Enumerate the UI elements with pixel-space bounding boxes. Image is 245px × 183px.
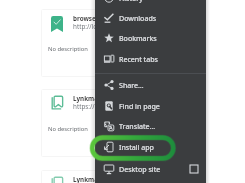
staticText: Recent tabs: [119, 54, 158, 64]
button[interactable]: Recent tabs: [95, 49, 206, 69]
button[interactable]: Bookmarks: [95, 28, 206, 48]
staticText: Share…: [119, 80, 144, 90]
staticText: Lynkmark bookmarks: [73, 94, 142, 103]
button[interactable]: Desktop site: [95, 159, 206, 179]
button[interactable]: Lynkmark bookmarks: [41, 89, 161, 157]
staticText: Bookmarks: [119, 33, 157, 43]
other: Desktop site toggle: [190, 165, 198, 173]
staticText: Lynkmark bookmarks: [73, 175, 142, 183]
staticText: No description: [48, 45, 88, 53]
staticText: No description: [48, 125, 88, 133]
button[interactable]: browserbookmarks: [41, 9, 161, 77]
button[interactable]: Find in page: [95, 96, 206, 116]
staticText: browserbookmarks: [73, 14, 135, 23]
button[interactable]: Translate…: [95, 116, 206, 136]
button[interactable]: Downloads: [95, 8, 206, 28]
staticText: Desktop site: [119, 164, 161, 174]
staticText: https://lynkmark.app: [73, 102, 136, 111]
staticText: Translate…: [119, 121, 156, 131]
button[interactable]: History: [95, 0, 206, 8]
staticText: Install app: [119, 142, 154, 152]
staticText: http://localhost: [73, 22, 119, 31]
button[interactable]: Install app: [95, 137, 206, 157]
staticText: History: [119, 0, 143, 3]
button[interactable]: Lynkmark bookmarks: [41, 170, 161, 183]
staticText: Downloads: [119, 13, 157, 23]
staticText: Find in page: [119, 101, 160, 111]
button[interactable]: Share…: [95, 75, 206, 95]
